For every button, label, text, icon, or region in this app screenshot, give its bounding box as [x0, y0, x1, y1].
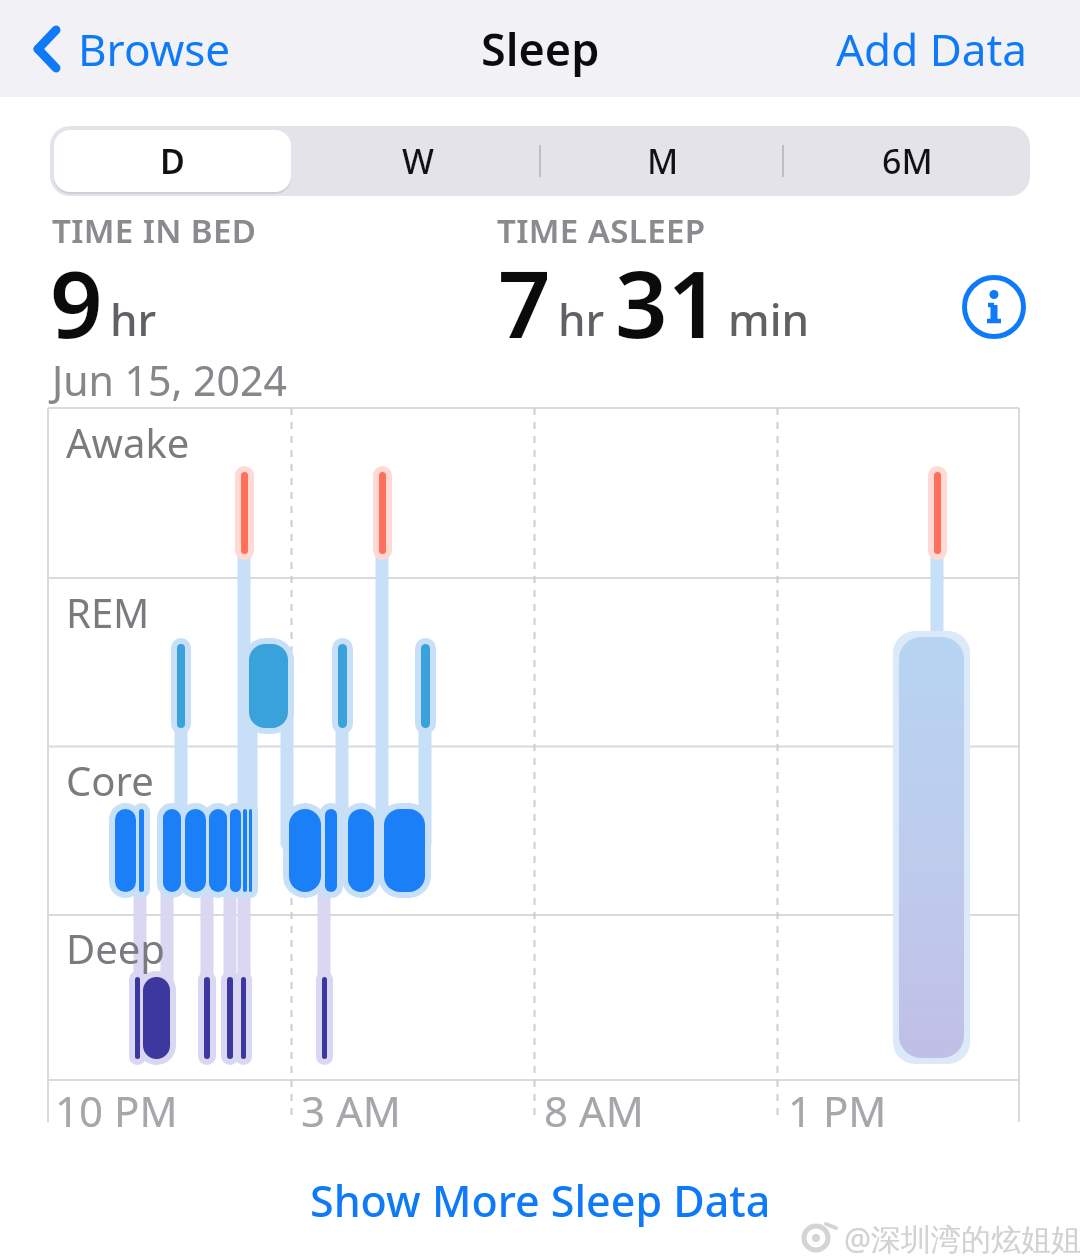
button[interactable] — [962, 275, 1026, 339]
staticText: hr — [558, 289, 605, 349]
staticText: Jun 15, 2024 — [52, 352, 287, 408]
staticText: Deep — [66, 921, 165, 975]
staticText: 31 — [615, 240, 721, 365]
button[interactable]: Show More Sleep Data — [0, 1168, 1080, 1232]
staticText: Show More Sleep Data — [310, 1171, 771, 1230]
staticText: 3 AM — [301, 1082, 401, 1139]
staticText: hr — [110, 289, 157, 349]
staticText: @深圳湾的炫姐姐 — [844, 1218, 1080, 1258]
button[interactable]: Browse — [34, 19, 231, 79]
staticText: D — [160, 138, 185, 184]
button[interactable]: D — [50, 126, 295, 196]
staticText: Awake — [66, 415, 190, 469]
staticText: M — [647, 138, 679, 184]
staticText: 10 PM — [55, 1082, 178, 1139]
staticText: Sleep — [481, 18, 600, 79]
button[interactable]: M — [540, 126, 785, 196]
button[interactable]: W — [295, 126, 540, 196]
button[interactable]: Add Data — [836, 19, 1028, 79]
button[interactable]: 6M — [785, 126, 1030, 196]
staticText: 8 AM — [544, 1082, 644, 1139]
staticText: REM — [66, 585, 150, 639]
button[interactable] — [54, 130, 291, 192]
staticText: min — [728, 289, 810, 349]
staticText: TIME IN BED — [52, 208, 257, 253]
staticText: Core — [66, 753, 154, 807]
staticText: Browse — [78, 19, 231, 79]
staticText: TIME ASLEEP — [497, 208, 706, 253]
staticText: 6M — [882, 138, 933, 184]
staticText: W — [402, 138, 434, 184]
staticText: 7 — [498, 240, 551, 365]
staticText: 9 — [50, 240, 103, 365]
staticText: 1 PM — [788, 1082, 887, 1139]
